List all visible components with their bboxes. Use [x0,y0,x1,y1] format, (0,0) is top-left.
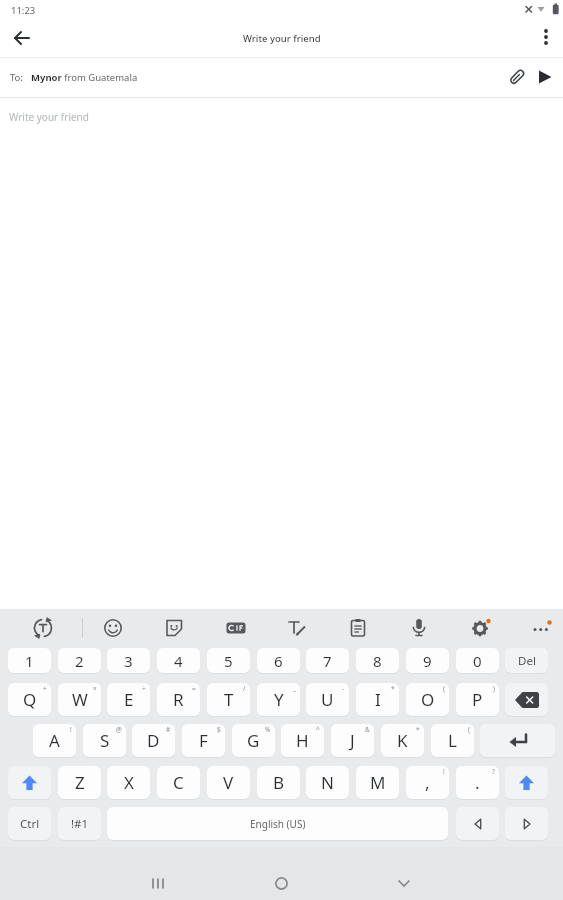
staticText: = [192,684,196,693]
button[interactable] [10,26,34,50]
button[interactable]: 5 [207,648,250,673]
staticText: N [321,771,334,794]
staticText: Mynor from Guatemala [31,71,138,84]
button[interactable]: U [306,683,349,716]
button[interactable]: H [281,724,324,757]
button[interactable] [274,876,289,891]
button[interactable]: 6 [257,648,300,673]
button[interactable] [505,807,548,840]
button[interactable] [150,876,166,892]
staticText: M [370,771,386,794]
staticText: # [166,725,171,734]
button[interactable]: E [107,683,150,716]
staticText: Y [274,688,284,711]
staticText: 6 [274,651,283,671]
button[interactable]: 0 [456,648,499,673]
button[interactable]: Y [257,683,300,716]
button[interactable]: J [331,724,374,757]
staticText: L [448,729,457,752]
button[interactable] [530,616,554,640]
button[interactable]: N [306,766,349,799]
staticText: T [224,688,234,711]
button[interactable] [456,807,499,840]
button[interactable]: C [157,766,200,799]
button[interactable]: 4 [157,648,200,673]
button[interactable] [162,616,186,640]
button[interactable] [536,27,556,47]
staticText: 11:23 [11,4,36,17]
staticText: ! [70,725,72,734]
button[interactable]: Q [8,683,51,716]
button[interactable]: K [381,724,424,757]
staticText: Write your friend [243,32,321,45]
button[interactable] [101,616,125,640]
button[interactable]: B [257,766,300,799]
button[interactable] [505,683,548,716]
button[interactable]: P [456,683,499,716]
button[interactable]: S [83,724,126,757]
staticText: 2 [75,651,84,671]
button[interactable]: 3 [107,648,150,673]
button[interactable]: . [456,766,499,799]
staticText: D [147,729,160,752]
button[interactable]: O [406,683,449,716]
button[interactable]: 1 [8,648,51,673]
staticText: . [475,771,480,794]
button[interactable]: F [182,724,225,757]
staticText: @ [116,725,122,734]
button[interactable] [8,766,51,799]
button[interactable] [285,616,309,640]
staticText: + [43,684,47,693]
staticText: % [265,725,271,734]
button[interactable]: G [232,724,275,757]
staticText: ) [493,684,495,693]
button[interactable] [397,878,411,892]
button[interactable]: !#1 [58,807,101,840]
staticText: ? [492,767,495,776]
staticText: 0 [473,651,482,671]
button[interactable]: 2 [58,648,101,673]
button[interactable]: English (US) [107,807,448,840]
staticText: C [173,771,184,794]
button[interactable] [536,68,554,86]
button[interactable]: To: [0,58,563,97]
button[interactable]: Del [505,648,548,673]
button[interactable]: 8 [356,648,399,673]
button[interactable] [224,616,248,640]
button[interactable]: M [356,766,399,799]
button[interactable]: V [207,766,250,799]
button[interactable]: R [157,683,200,716]
button[interactable] [30,615,56,641]
button[interactable] [469,616,493,640]
staticText: ! [443,767,445,776]
button[interactable]: L [431,724,474,757]
staticText: E [124,688,134,711]
button[interactable]: Z [58,766,101,799]
staticText: To: [10,71,23,84]
button[interactable]: 7 [306,648,349,673]
button[interactable] [505,766,548,799]
button[interactable]: D [132,724,175,757]
button[interactable]: Ctrl [8,807,51,840]
staticText: ÷ [142,684,146,693]
button[interactable] [346,616,370,640]
staticText: J [350,729,355,752]
staticText: 9 [423,651,432,671]
button[interactable]: W [58,683,101,716]
staticText: F [199,729,208,752]
staticText: ( [443,684,445,693]
staticText: V [223,771,234,794]
button[interactable]: X [107,766,150,799]
button[interactable]: T [207,683,250,716]
button[interactable] [407,616,431,640]
button[interactable]: I [356,683,399,716]
button[interactable]: 9 [406,648,449,673]
button[interactable]: , [406,766,449,799]
staticText: G [247,729,260,752]
button[interactable] [506,66,528,88]
staticText: X [124,771,134,794]
staticText: R [173,688,184,711]
staticText: A [49,729,60,752]
button[interactable]: A [33,724,76,757]
button[interactable] [480,724,555,757]
